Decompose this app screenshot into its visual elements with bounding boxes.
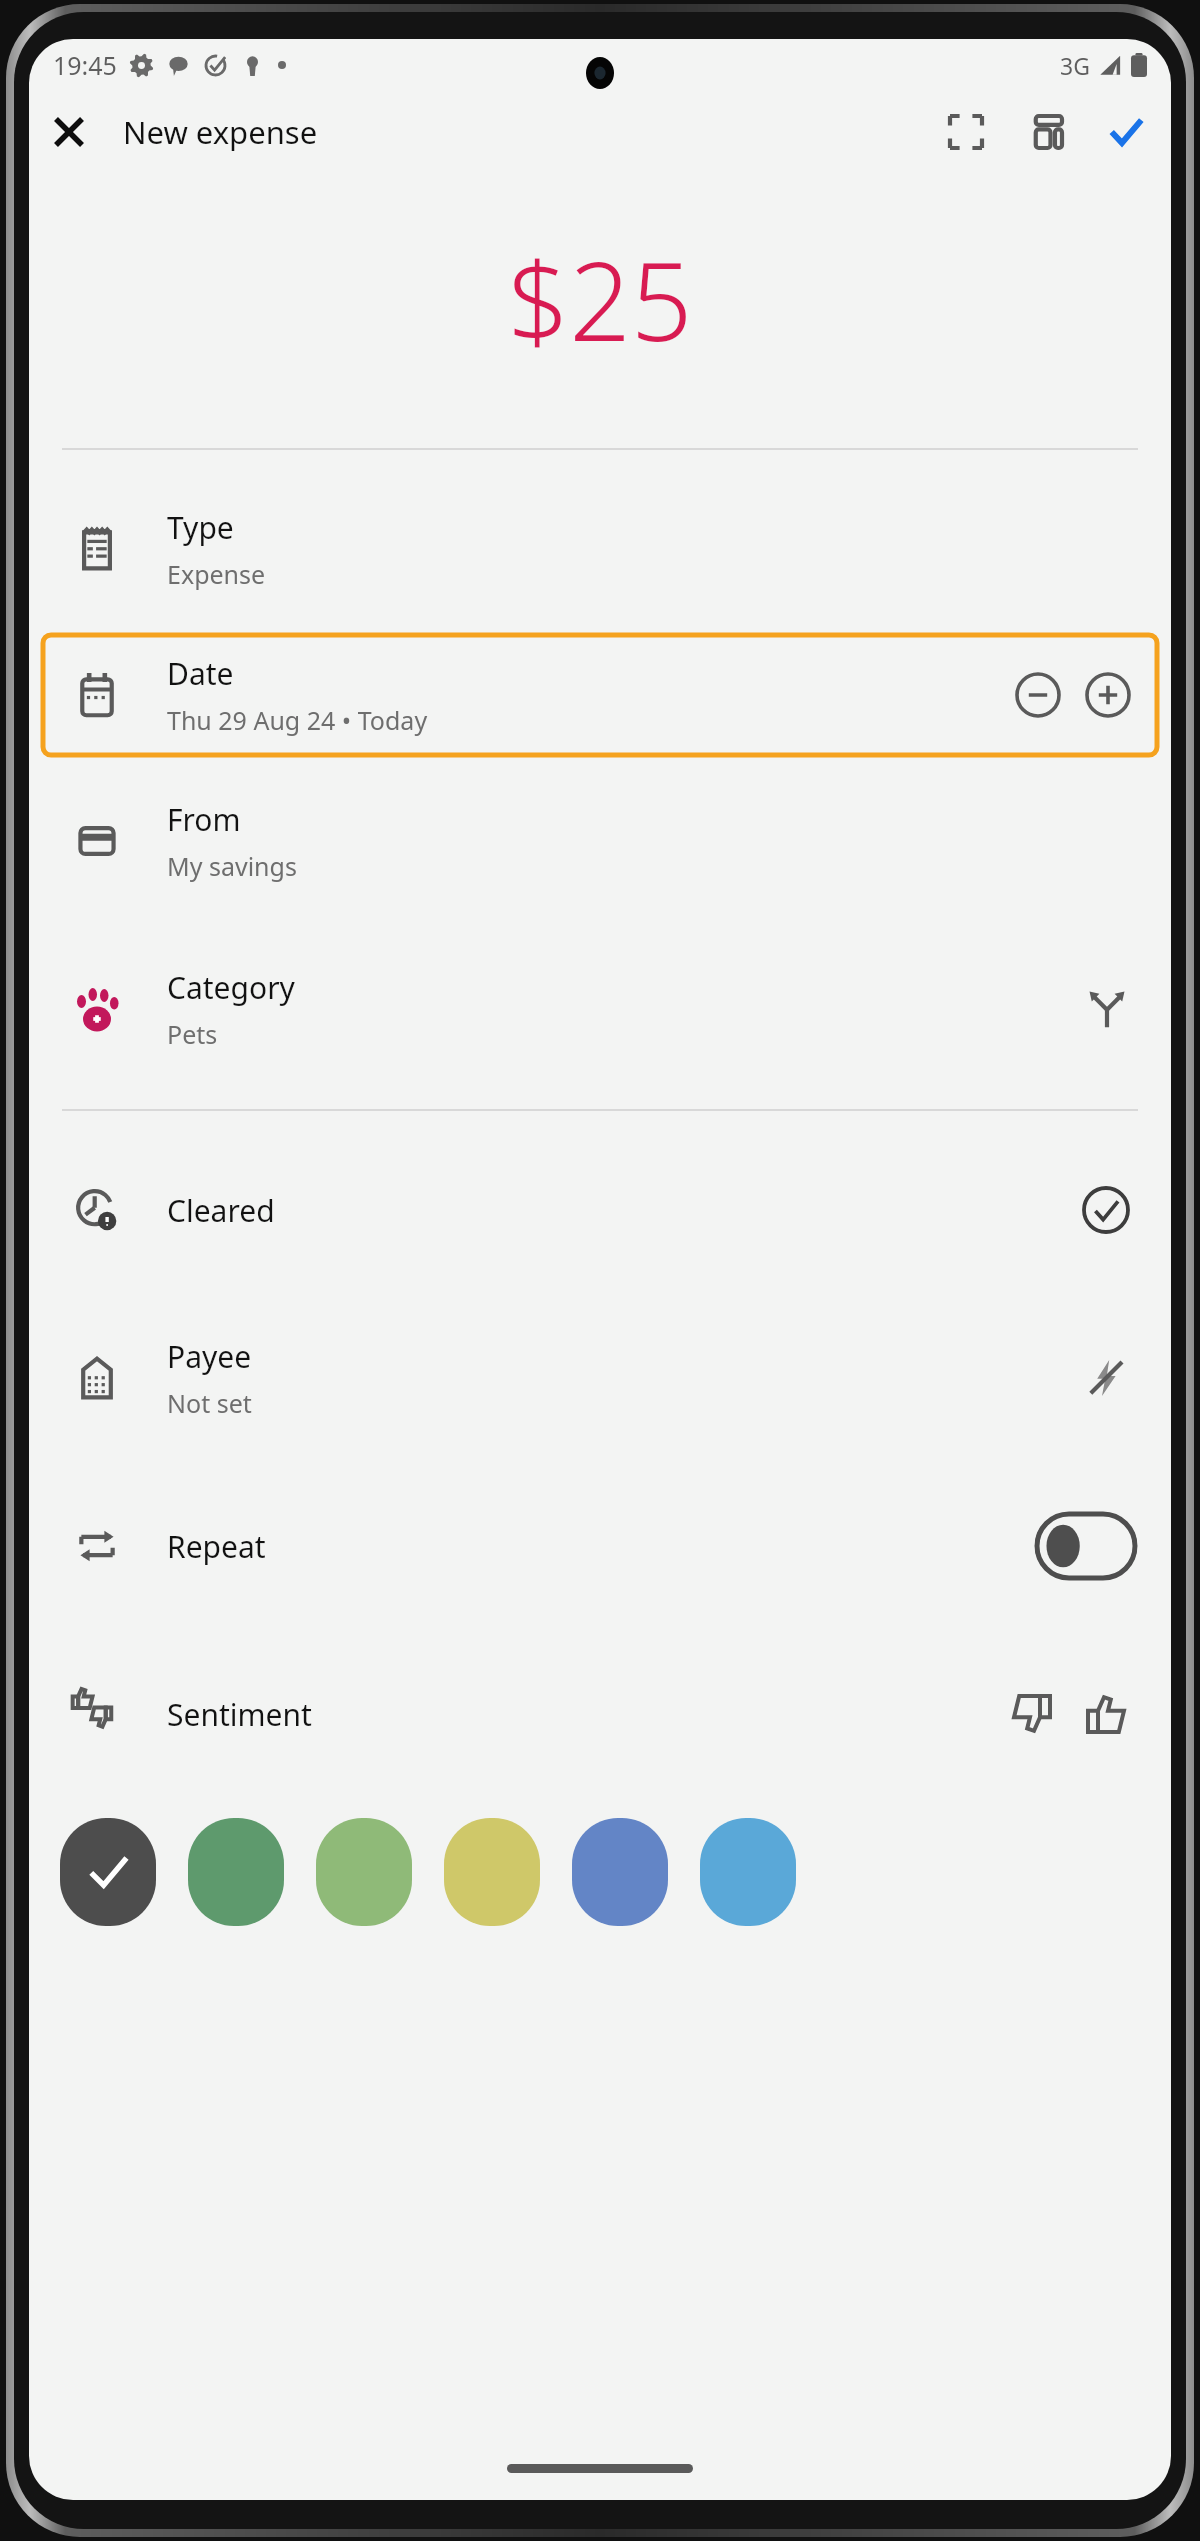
staticText: My savings xyxy=(167,849,297,883)
button[interactable]: Colour 6 xyxy=(700,1818,796,1926)
button[interactable]: Scan xyxy=(935,101,997,163)
button[interactable]: Split xyxy=(1076,978,1138,1040)
button[interactable]: Colour 4 xyxy=(444,1818,540,1926)
staticText: Sentiment xyxy=(167,1694,312,1735)
button[interactable]: $25 xyxy=(29,173,1171,448)
staticText: Thu 29 Aug 24 • Today xyxy=(167,703,428,737)
staticText: 19:45 xyxy=(53,48,117,82)
staticText: Date xyxy=(167,653,234,694)
button[interactable]: Payee xyxy=(29,1294,1171,1462)
button[interactable]: Thumbs down xyxy=(1000,1682,1064,1746)
staticText: Not set xyxy=(167,1386,252,1420)
button[interactable]: Colour 3 xyxy=(316,1818,412,1926)
staticText: New expense xyxy=(123,111,318,153)
button[interactable]: Thumbs up xyxy=(1074,1682,1138,1746)
button[interactable]: Type xyxy=(29,465,1171,633)
button[interactable]: Layout xyxy=(1015,101,1077,163)
button[interactable]: Category xyxy=(29,925,1171,1093)
staticText: Type xyxy=(167,507,234,548)
button[interactable]: Close xyxy=(37,100,101,164)
staticText: From xyxy=(167,799,241,840)
staticText: $25 xyxy=(507,226,693,373)
button[interactable]: Date xyxy=(41,633,1159,757)
button[interactable]: Flash off xyxy=(1074,1346,1138,1410)
staticText: Category xyxy=(167,967,295,1008)
button[interactable]: Sentiment xyxy=(29,1630,1171,1798)
button[interactable]: Cleared xyxy=(29,1126,1171,1294)
button[interactable]: Colour 5 xyxy=(572,1818,668,1926)
button[interactable]: Save xyxy=(1095,101,1157,163)
staticText: Expense xyxy=(167,557,266,591)
staticText: Pets xyxy=(167,1017,218,1051)
button[interactable]: From xyxy=(29,757,1171,925)
button[interactable]: Colour 2 xyxy=(188,1818,284,1926)
staticText: Cleared xyxy=(167,1190,275,1231)
button[interactable]: Previous day xyxy=(1008,665,1068,725)
staticText: 3G xyxy=(1060,50,1090,81)
button[interactable]: Cleared status xyxy=(1074,1178,1138,1242)
button[interactable]: Repeat toggle xyxy=(1034,1508,1138,1584)
button[interactable]: Colour 1 xyxy=(60,1818,156,1926)
button[interactable]: Next day xyxy=(1078,665,1138,725)
button[interactable]: Repeat xyxy=(29,1462,1171,1630)
staticText: Payee xyxy=(167,1336,252,1377)
staticText: Repeat xyxy=(167,1526,266,1567)
